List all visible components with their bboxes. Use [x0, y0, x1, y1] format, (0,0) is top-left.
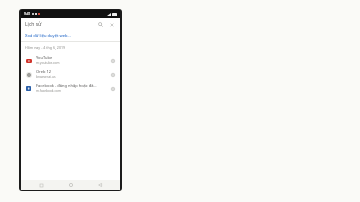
button[interactable]: YouTube: [21, 53, 120, 67]
staticText: YouTube: [36, 55, 53, 60]
staticText: Oreb 12: [36, 69, 52, 74]
staticText: m.facebook.com: [36, 89, 61, 93]
button[interactable]: Xoá dữ liệu duyệt web...: [21, 30, 120, 41]
staticText: 9:41: [24, 12, 31, 16]
button[interactable]: Remove from history: [108, 70, 117, 79]
button[interactable]: Facebook - đăng nhập hoặc đă...: [21, 81, 120, 95]
button[interactable]: Close: [106, 19, 117, 30]
button[interactable]: Oreb 12: [21, 67, 120, 81]
staticText: Facebook - đăng nhập hoặc đă...: [36, 83, 97, 88]
staticText: Lịch sử: [25, 21, 42, 28]
button[interactable]: Recent apps: [32, 180, 50, 190]
button[interactable]: Home: [62, 180, 80, 190]
staticText: Xoá dữ liệu duyệt web...: [25, 33, 71, 38]
staticText: m.youtube.com: [36, 61, 60, 65]
button[interactable]: Back: [91, 180, 109, 190]
button[interactable]: Search: [95, 19, 106, 30]
button[interactable]: Remove from history: [108, 56, 117, 65]
button[interactable]: Lịch sử: [25, 18, 95, 30]
staticText: Hôm nay - 4 thg 6, 2019: [25, 45, 66, 50]
staticText: browser.ai.us: [36, 75, 56, 79]
button[interactable]: Remove from history: [108, 84, 117, 93]
